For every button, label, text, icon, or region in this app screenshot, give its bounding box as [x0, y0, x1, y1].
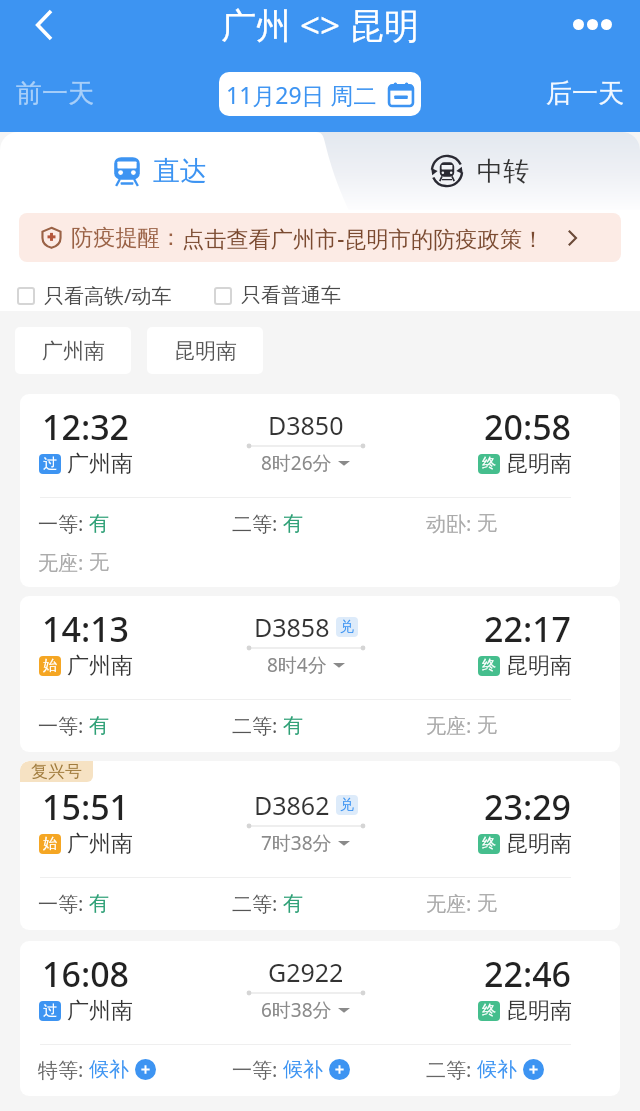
button[interactable]: 12:32 — [20, 394, 620, 587]
staticText: 一等: — [38, 890, 89, 917]
button[interactable]: 16:08 — [20, 941, 620, 1096]
staticText: 16:08 — [42, 951, 130, 997]
staticText: 7时38分 — [261, 830, 332, 856]
button[interactable]: 11月29日 周二 — [219, 72, 421, 116]
staticText: G2922 — [268, 955, 344, 989]
staticText: 终 — [482, 1002, 496, 1020]
staticText: 昆明南 — [174, 338, 237, 364]
staticText: 广州南 — [67, 997, 133, 1025]
button[interactable]: Back — [20, 1, 67, 48]
staticText: 复兴号 — [31, 761, 82, 782]
staticText: 无座: — [426, 890, 477, 917]
staticText: 二等: — [232, 510, 283, 537]
staticText: 有 — [89, 511, 109, 536]
button[interactable]: 中转 — [318, 132, 640, 210]
staticText: 兑 — [340, 796, 354, 814]
button[interactable]: 防疫提醒： — [19, 213, 621, 262]
staticText: 始 — [43, 657, 57, 675]
staticText: 无 — [89, 550, 109, 575]
staticText: 动卧: — [426, 510, 477, 537]
staticText: 二等: — [232, 712, 283, 739]
staticText: D3862 — [254, 788, 330, 822]
staticText: 无座: — [38, 549, 89, 576]
staticText: 无 — [477, 713, 497, 738]
staticText: 终 — [482, 835, 496, 853]
staticText: 终 — [482, 657, 496, 675]
staticText: 特等: — [38, 1056, 89, 1083]
staticText: 14:13 — [42, 606, 130, 652]
staticText: 有 — [283, 713, 303, 738]
staticText: 广州南 — [42, 338, 105, 364]
staticText: 始 — [43, 835, 57, 853]
staticText: 候补 — [89, 1057, 129, 1082]
staticText: 候补 — [477, 1057, 517, 1082]
staticText: 22:46 — [484, 951, 572, 997]
staticText: 广州南 — [67, 450, 133, 478]
button[interactable]: 只看普通车 — [214, 283, 341, 308]
staticText: 一等: — [232, 1056, 283, 1083]
staticText: 12:32 — [42, 404, 130, 450]
staticText: 有 — [89, 891, 109, 916]
button[interactable]: 14:13 — [20, 596, 620, 752]
staticText: 无 — [477, 891, 497, 916]
staticText: 昆明南 — [506, 830, 572, 858]
staticText: 防疫提醒： — [71, 224, 182, 252]
staticText: D3858 — [254, 610, 330, 644]
button[interactable]: More options — [564, 0, 620, 48]
staticText: 23:29 — [484, 784, 572, 830]
staticText: 只看高铁/动车 — [44, 282, 172, 309]
staticText: 20:58 — [484, 404, 572, 450]
staticText: 过 — [43, 1002, 57, 1020]
button[interactable]: 广州南 — [15, 327, 131, 374]
staticText: 终 — [482, 455, 496, 473]
staticText: 有 — [283, 891, 303, 916]
button[interactable]: 只看高铁/动车 — [17, 282, 172, 309]
staticText: 22:17 — [484, 606, 572, 652]
staticText: 昆明南 — [506, 652, 572, 680]
staticText: 广州南 — [67, 830, 133, 858]
button[interactable]: 复兴号 — [20, 761, 620, 930]
staticText: 中转 — [477, 155, 529, 188]
staticText: 11月29日 周二 — [226, 79, 377, 110]
button[interactable]: 后一天 — [544, 73, 626, 114]
staticText: 过 — [43, 455, 57, 473]
staticText: 有 — [89, 713, 109, 738]
staticText: 只看普通车 — [241, 283, 341, 308]
staticText: 有 — [283, 511, 303, 536]
staticText: 二等: — [426, 1056, 477, 1083]
staticText: 兑 — [340, 618, 354, 636]
staticText: 一等: — [38, 510, 89, 537]
staticText: D3850 — [268, 408, 344, 442]
button[interactable]: 昆明南 — [147, 327, 263, 374]
staticText: 候补 — [283, 1057, 323, 1082]
staticText: 昆明南 — [506, 450, 572, 478]
staticText: 广州南 — [67, 652, 133, 680]
staticText: 6时38分 — [261, 997, 332, 1023]
staticText: 一等: — [38, 712, 89, 739]
staticText: 广州 <> 昆明 — [221, 1, 420, 49]
staticText: 8时4分 — [267, 652, 327, 678]
button[interactable]: 前一天 — [14, 73, 96, 114]
staticText: 二等: — [232, 890, 283, 917]
staticText: 昆明南 — [506, 997, 572, 1025]
staticText: 直达 — [153, 154, 207, 188]
button[interactable]: 直达 — [0, 132, 318, 210]
staticText: 点击查看广州市-昆明市的防疫政策！ — [182, 223, 545, 253]
staticText: 无 — [477, 511, 497, 536]
staticText: 15:51 — [42, 784, 130, 830]
staticText: 8时26分 — [261, 450, 332, 476]
staticText: 无座: — [426, 712, 477, 739]
